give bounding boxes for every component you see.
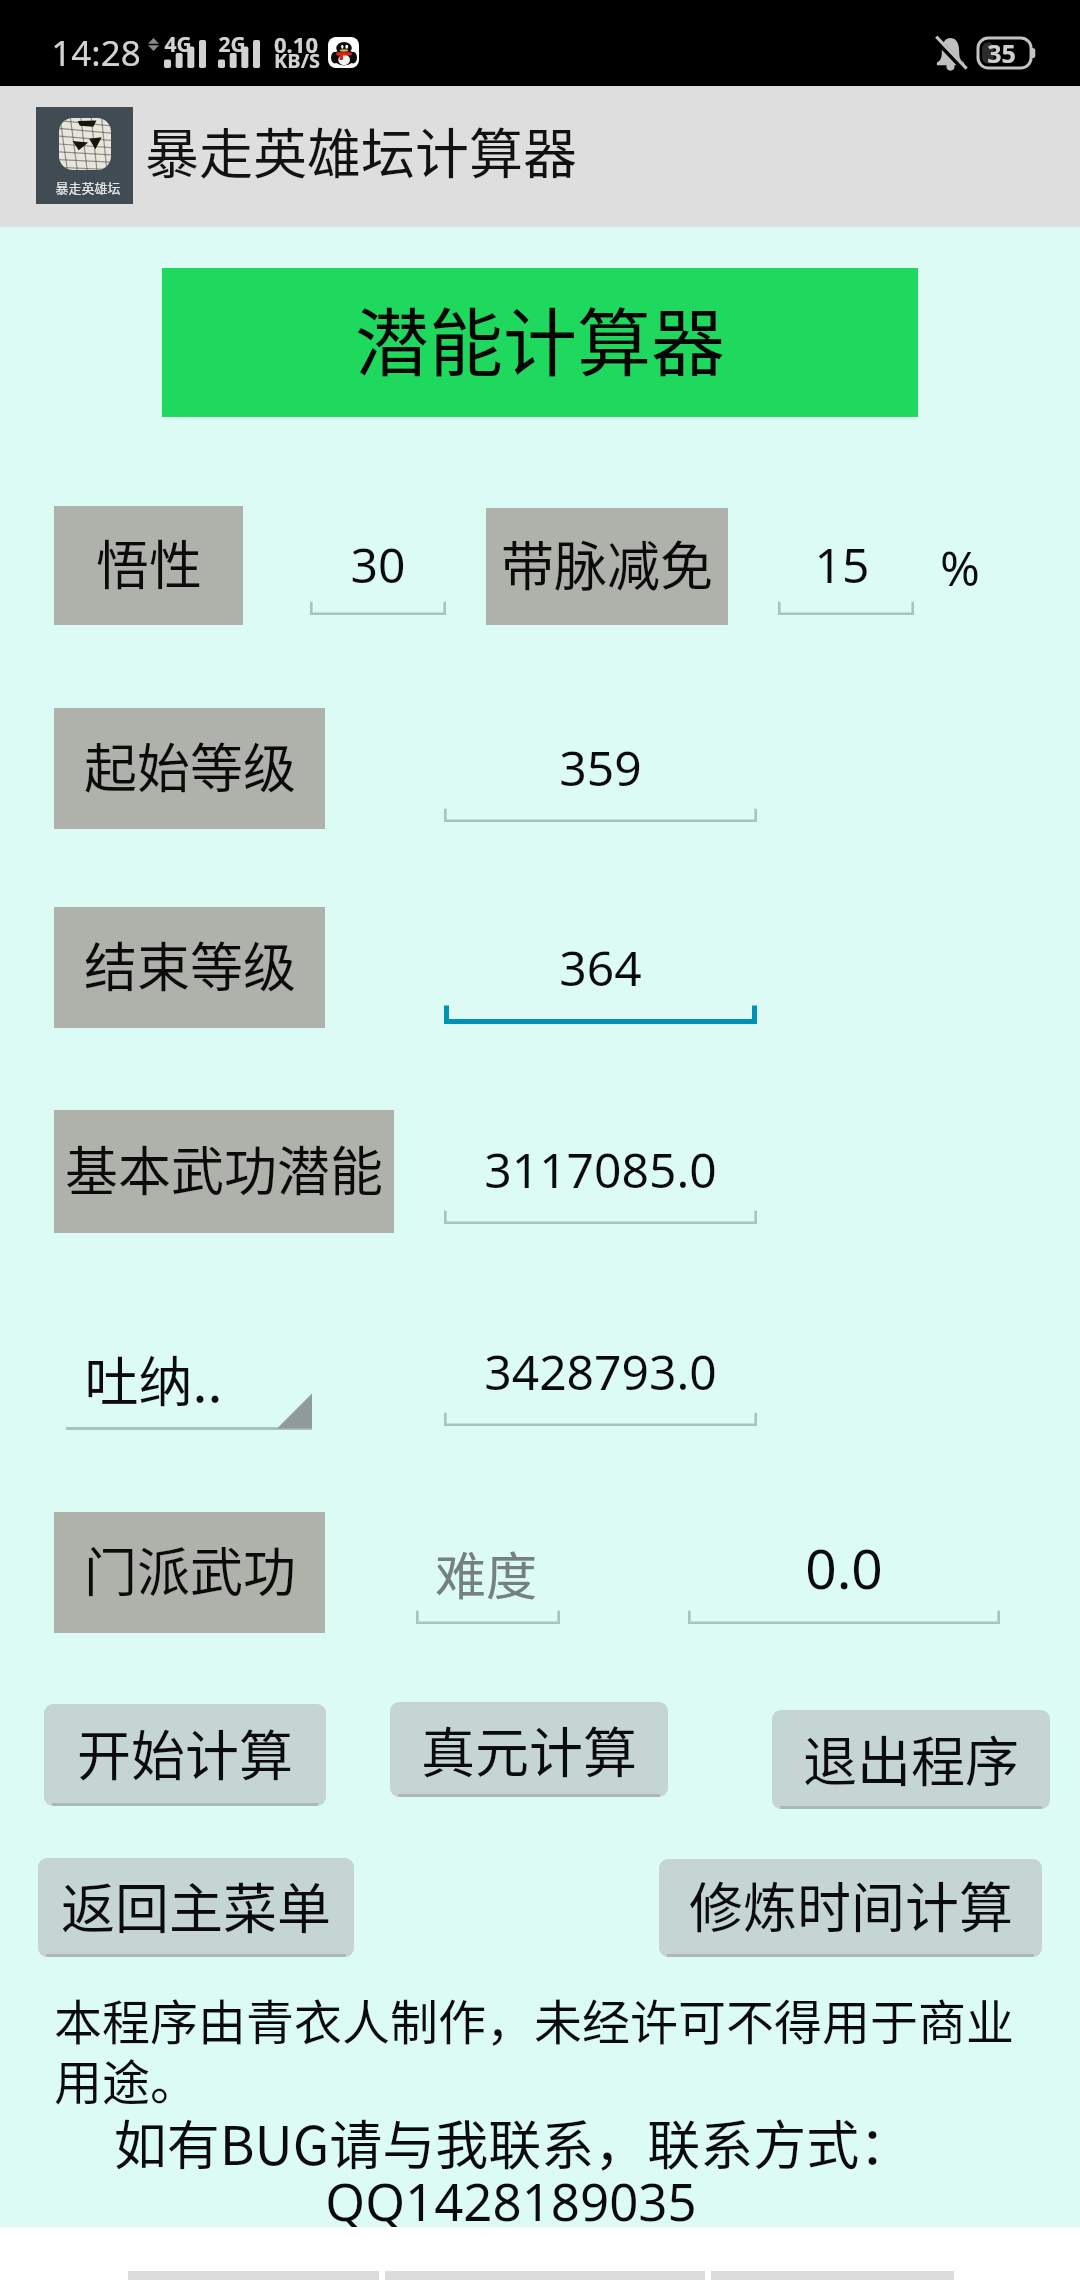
staticText: %	[930, 535, 990, 600]
staticText: 2G	[218, 30, 246, 59]
button[interactable]: 修炼时间计算	[659, 1859, 1042, 1957]
button[interactable]: 真元计算	[390, 1702, 668, 1797]
staticText: 364	[444, 935, 757, 1000]
other: Silent mode	[935, 36, 966, 70]
staticText: 返回主菜单	[61, 1866, 331, 1944]
staticText: 起始等级	[84, 727, 296, 804]
staticText: 悟性	[96, 524, 202, 601]
staticText: 14:28	[51, 29, 141, 77]
button[interactable]: 起始等级	[54, 708, 325, 829]
staticText: 0.0	[688, 1530, 1000, 1605]
other: Battery 35 percent	[978, 38, 1036, 68]
staticText: 暴走英雄坛计算器	[145, 111, 577, 189]
staticText: 基本武功潜能	[65, 1130, 383, 1207]
button[interactable]: 门派武功	[54, 1512, 325, 1633]
staticText: 0.10	[274, 29, 318, 59]
button[interactable]: 基本武功潜能	[54, 1110, 394, 1233]
button[interactable]: 开始计算	[44, 1704, 326, 1806]
button[interactable]: 选择武功	[66, 1335, 312, 1430]
button[interactable]: 退出程序	[772, 1710, 1050, 1809]
staticText: 如有BUG请与我联系，联系方式：	[17, 2104, 1009, 2181]
staticText: 退出程序	[803, 1719, 1019, 1797]
button[interactable]: 暴走英雄坛	[36, 107, 133, 204]
staticText: 难度	[414, 1536, 558, 1610]
button[interactable]: 结束等级	[54, 907, 325, 1028]
staticText: 4G	[164, 30, 192, 59]
staticText: QQ1428189035	[23, 2166, 999, 2235]
staticText: 35	[987, 36, 1016, 66]
staticText: 359	[444, 735, 757, 800]
staticText: 3117085.0	[444, 1137, 757, 1202]
staticText: 门派武功	[84, 1531, 296, 1608]
staticText: 真元计算	[421, 1710, 637, 1788]
staticText: 本程序由青衣人制作，未经许可不得用于商业用途。	[54, 1984, 1026, 2114]
staticText: KB/S	[274, 47, 320, 74]
button[interactable]: 潜能计算器	[162, 268, 918, 417]
staticText: 开始计算	[77, 1713, 293, 1791]
button[interactable]: 返回主菜单	[38, 1858, 354, 1957]
staticText: 修炼时间计算	[689, 1865, 1013, 1943]
staticText: 30	[310, 532, 446, 597]
staticText: 结束等级	[84, 926, 296, 1003]
button[interactable]: QQ	[328, 37, 359, 68]
staticText: 3428793.0	[444, 1339, 757, 1404]
staticText: 暴走英雄坛	[55, 178, 121, 197]
staticText: 吐纳..	[84, 1339, 223, 1417]
staticText: 15	[774, 532, 910, 597]
button[interactable]: 悟性	[54, 506, 243, 625]
staticText: 潜能计算器	[355, 284, 725, 391]
button[interactable]: 带脉减免	[486, 508, 728, 625]
staticText: 带脉减免	[501, 525, 713, 602]
